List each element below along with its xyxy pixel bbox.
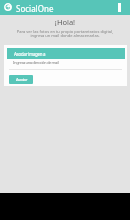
staticText: ¡Hola! (0, 17, 130, 27)
staticText: Asociar imagen a (14, 51, 46, 57)
staticText: Para ver las fotos en tu propio portaret… (0, 29, 130, 39)
staticText: Asociar (16, 77, 27, 82)
staticText: SocialOne (16, 3, 54, 14)
button[interactable]: Asociar (9, 75, 33, 84)
button[interactable]: More options (114, 0, 128, 15)
staticText: Ingresa una dirección de mail (13, 60, 59, 66)
